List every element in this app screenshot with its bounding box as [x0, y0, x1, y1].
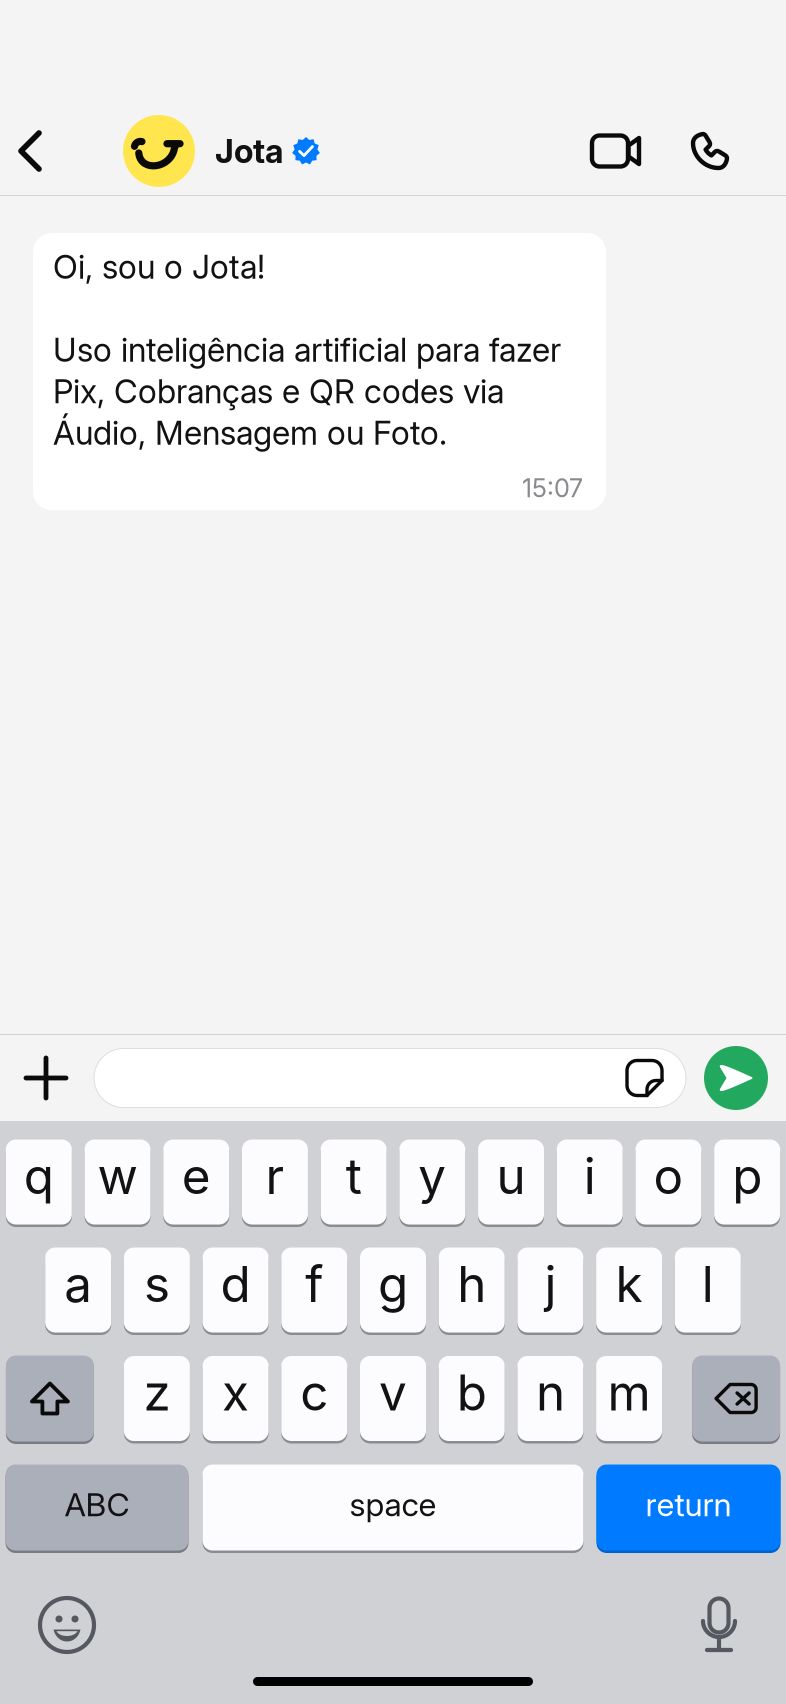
button[interactable]: x	[203, 1354, 269, 1442]
staticText: s	[144, 1254, 170, 1314]
staticText: b	[457, 1363, 487, 1422]
staticText: t	[346, 1146, 362, 1206]
staticText: q	[24, 1146, 54, 1206]
button[interactable]: e	[163, 1138, 229, 1226]
staticText: l	[702, 1254, 714, 1314]
button[interactable]: Emoji keyboard	[40, 1598, 94, 1652]
staticText: v	[379, 1363, 407, 1422]
staticText: p	[732, 1146, 762, 1206]
button[interactable]: g	[360, 1246, 426, 1334]
button[interactable]: c	[281, 1354, 347, 1442]
button[interactable]: f	[281, 1246, 347, 1334]
button[interactable]: space	[202, 1463, 583, 1552]
staticText: i	[584, 1146, 596, 1206]
button[interactable]: v	[360, 1354, 426, 1442]
staticText: u	[497, 1146, 526, 1206]
button[interactable]: w	[85, 1138, 151, 1226]
button[interactable]: l	[675, 1246, 741, 1334]
staticText: c	[300, 1363, 328, 1422]
button[interactable]: i	[557, 1138, 623, 1226]
staticText: g	[378, 1254, 408, 1314]
button[interactable]: Attach	[26, 1058, 66, 1098]
staticText: r	[265, 1146, 284, 1206]
button[interactable]: n	[517, 1354, 583, 1442]
staticText: space	[349, 1485, 436, 1524]
staticText: d	[221, 1254, 251, 1314]
staticText: a	[64, 1254, 92, 1314]
staticText: x	[222, 1363, 249, 1422]
staticText: ABC	[64, 1485, 129, 1524]
button[interactable]: k	[596, 1246, 662, 1334]
button[interactable]: j	[517, 1246, 583, 1334]
staticText: n	[536, 1363, 565, 1422]
button[interactable]: Jota	[123, 115, 320, 187]
staticText: m	[608, 1363, 651, 1422]
staticText: Jota	[215, 131, 283, 171]
button[interactable]: s	[124, 1246, 190, 1334]
staticText: Oi, sou o Jota! Uso inteligência artific…	[53, 247, 561, 453]
button[interactable]: Dictation	[699, 1596, 739, 1654]
button[interactable]: b	[439, 1354, 505, 1442]
button[interactable]: o	[635, 1138, 701, 1226]
staticText: k	[616, 1254, 643, 1314]
button[interactable]: u	[478, 1138, 544, 1226]
button[interactable]: return	[596, 1463, 780, 1552]
button[interactable]: Stickers	[627, 1060, 662, 1095]
button[interactable]: Back	[3, 119, 57, 183]
button[interactable]: h	[439, 1246, 505, 1334]
button[interactable]: Delete	[692, 1354, 780, 1443]
staticText: h	[457, 1254, 486, 1314]
button[interactable]: Voice call	[690, 131, 731, 171]
staticText: e	[182, 1146, 211, 1206]
button[interactable]: m	[596, 1354, 662, 1442]
button[interactable]: r	[242, 1138, 308, 1226]
button[interactable]: z	[124, 1354, 190, 1442]
staticText: return	[645, 1485, 731, 1524]
staticText: z	[143, 1363, 170, 1422]
button[interactable]: a	[45, 1246, 111, 1334]
staticText: j	[544, 1254, 556, 1314]
staticText: 15:07	[522, 473, 583, 503]
button[interactable]: Send	[704, 1046, 768, 1110]
staticText: y	[418, 1146, 446, 1206]
button[interactable]: ABC	[5, 1463, 188, 1552]
button[interactable]: t	[321, 1138, 387, 1226]
staticText: f	[305, 1254, 323, 1314]
button[interactable]: d	[203, 1246, 269, 1334]
staticText: o	[653, 1146, 683, 1206]
button[interactable]: Shift	[6, 1354, 94, 1443]
button[interactable]: Video call	[590, 133, 642, 168]
button[interactable]: p	[714, 1138, 780, 1226]
button[interactable]: y	[399, 1138, 465, 1226]
staticText: w	[98, 1146, 138, 1206]
button[interactable]: q	[6, 1138, 72, 1226]
